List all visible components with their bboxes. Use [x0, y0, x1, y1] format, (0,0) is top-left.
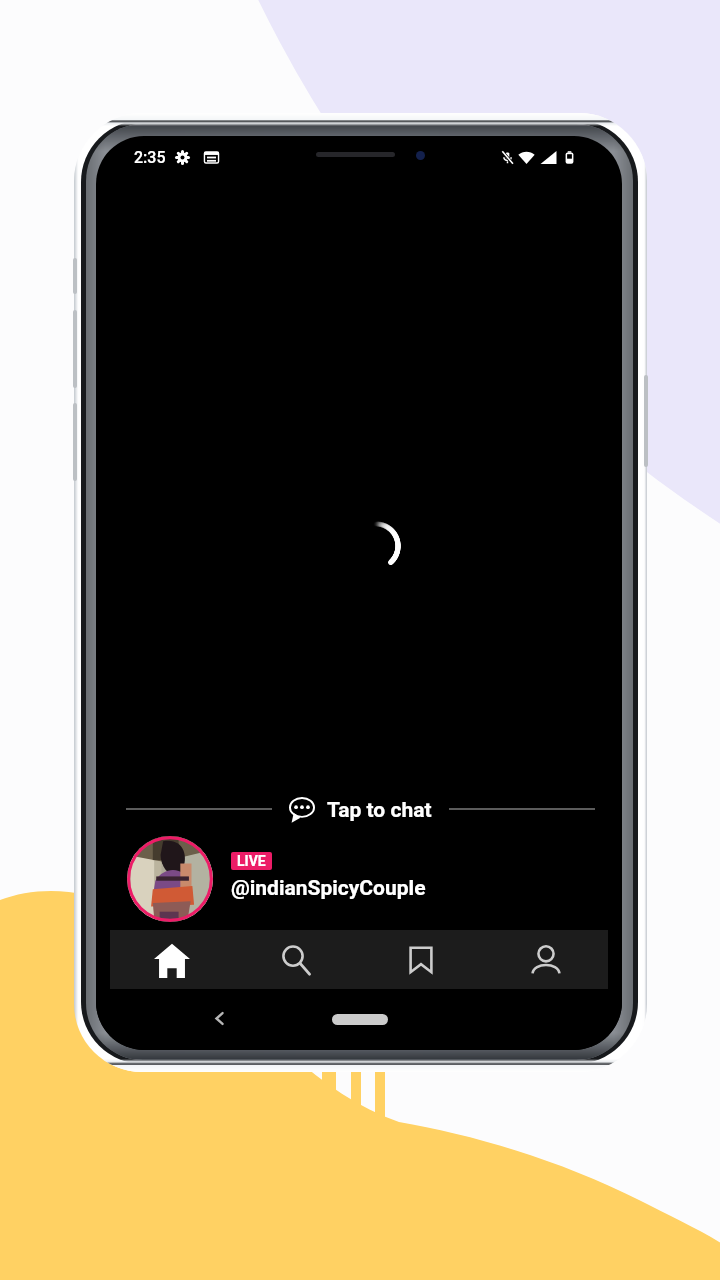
button[interactable]: LIVE [96, 834, 622, 930]
other: Back [211, 1010, 228, 1027]
button[interactable]: Profile [483, 930, 608, 989]
staticText: @indianSpicyCouple [231, 876, 426, 901]
staticText: Tap to chat [327, 798, 432, 823]
button[interactable]: Search [234, 930, 358, 989]
button[interactable]: Saved [358, 930, 483, 989]
button[interactable]: Home [110, 930, 234, 989]
staticText: LIVE [237, 853, 266, 869]
staticText: 2:35 [134, 148, 166, 167]
button[interactable]: Tap to chat [96, 783, 622, 834]
